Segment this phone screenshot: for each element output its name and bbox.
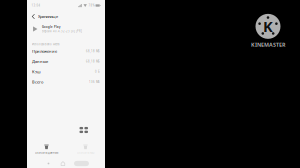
staticText: Данные xyxy=(32,59,48,64)
staticText: 13:04 xyxy=(31,4,40,7)
staticText: Google Play xyxy=(42,25,60,29)
staticText: 68,18 МБ xyxy=(86,49,100,53)
button[interactable]: Приложение xyxy=(27,46,105,56)
button[interactable]: Home xyxy=(54,159,72,168)
staticText: K xyxy=(263,17,273,36)
button[interactable]: Всего xyxy=(27,77,105,87)
staticText: 78% xyxy=(88,4,94,7)
button[interactable]: Back xyxy=(29,11,38,22)
staticText: Очистить данные xyxy=(35,151,58,154)
staticText: Кэш xyxy=(32,69,41,74)
staticText: 136 МБ xyxy=(89,80,100,84)
button[interactable]: Google Play xyxy=(27,22,105,36)
staticText: Всего xyxy=(32,79,43,85)
staticText: KINEMASTER xyxy=(251,41,285,48)
staticText: Приложение xyxy=(32,48,57,54)
button[interactable]: Очистить кэш xyxy=(66,143,105,156)
staticText: Очистить кэш xyxy=(77,151,94,154)
staticText: Хранилище xyxy=(38,14,58,19)
button[interactable]: Данные xyxy=(27,56,105,67)
staticText: 0 Б xyxy=(95,70,100,73)
button[interactable]: Back xyxy=(43,159,54,168)
staticText: Использовано места xyxy=(32,42,59,46)
button[interactable]: Кэш xyxy=(27,67,105,77)
button[interactable]: Recents xyxy=(72,159,91,168)
button[interactable]: Очистить данные xyxy=(27,143,66,156)
staticText: 68,18 МБ xyxy=(86,60,100,63)
staticText: Версия 40.4.32-23 [0] [PR] xyxy=(42,29,82,33)
